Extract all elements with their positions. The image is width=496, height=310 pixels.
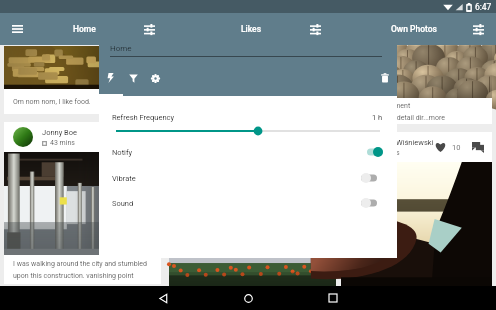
staticText: Likes	[241, 24, 262, 34]
staticText: Home	[73, 24, 96, 34]
button[interactable]: Filter Own Photos	[467, 13, 489, 45]
button[interactable]: Open navigation drawer	[6, 18, 28, 40]
staticText: Home	[110, 44, 132, 53]
button[interactable]: Photo of a garden	[169, 258, 336, 286]
staticText: 1 h	[372, 113, 383, 122]
button[interactable]: Home	[44, 13, 124, 45]
button[interactable]: Photo of food	[4, 46, 161, 89]
button[interactable]: Settings	[146, 69, 164, 87]
button[interactable]: Vibrate	[99, 167, 397, 189]
button[interactable]: Om nom nom, I like food.	[4, 89, 161, 114]
button[interactable]: ..ance arrangement ..e up close-up detai…	[341, 98, 492, 124]
button[interactable]: I was walking around the city and stumbl…	[4, 255, 161, 284]
staticText: Om nom nom, I like food.	[13, 98, 91, 106]
staticText: Notify	[112, 148, 133, 157]
staticText: 43 mins	[50, 139, 75, 147]
button[interactable]: Photo of walnuts	[341, 46, 492, 98]
button[interactable]: Likes	[211, 13, 291, 45]
button[interactable]: Filter Likes	[304, 13, 326, 45]
button[interactable]: Recents	[313, 286, 353, 310]
button[interactable]: Flash	[101, 69, 119, 87]
button[interactable]: Photo from a car	[341, 162, 492, 286]
button[interactable]: Home	[228, 286, 268, 310]
staticText: 6:47	[475, 2, 492, 12]
staticText: Sound	[112, 199, 134, 208]
button[interactable]: Filter	[124, 69, 142, 87]
staticText: Vibrate	[112, 174, 136, 183]
button[interactable]: Wiśniewski	[396, 132, 487, 162]
button[interactable]: Delete	[376, 69, 394, 87]
button[interactable]: Refresh frequency slider	[112, 123, 384, 139]
button[interactable]: Photo of a street	[4, 152, 161, 255]
button[interactable]: Back	[143, 286, 183, 310]
staticText: 10	[452, 143, 461, 152]
staticText: s	[396, 149, 400, 157]
staticText: Refresh Frequency	[112, 113, 175, 122]
button[interactable]: Filter Home	[138, 13, 160, 45]
staticText: Own Photos	[391, 24, 437, 34]
button[interactable]: Notify	[99, 141, 397, 163]
button[interactable]: Sound	[99, 192, 397, 214]
button[interactable]: Own Photos	[374, 13, 454, 45]
staticText: ..ance arrangement ..e up close-up detai…	[350, 102, 445, 121]
staticText: I was walking around the city and stumbl…	[13, 260, 147, 279]
staticText: Wiśniewski	[396, 138, 434, 147]
staticText: Jonny Boe	[42, 128, 78, 137]
button[interactable]: Jonny Boe	[13, 122, 161, 152]
